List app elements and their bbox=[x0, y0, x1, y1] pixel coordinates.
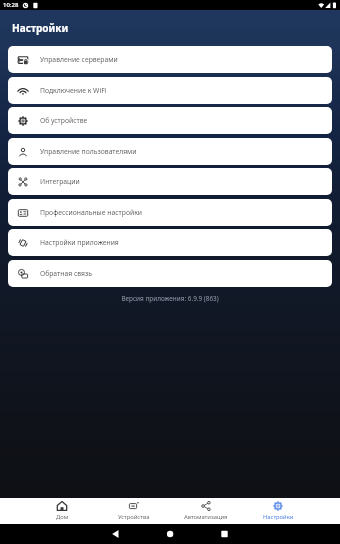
button[interactable]: Устройства bbox=[98, 498, 170, 524]
button[interactable]: Профессиональные настройки bbox=[8, 199, 332, 226]
staticText: Устройства bbox=[118, 513, 150, 521]
staticText: Об устройстве bbox=[40, 116, 88, 125]
staticText: Автоматизация bbox=[184, 513, 228, 521]
staticText: 10:28 bbox=[3, 1, 19, 9]
staticText: Обратная связь bbox=[40, 269, 93, 278]
button[interactable]: Настройки приложения bbox=[8, 229, 332, 256]
staticText: Дом bbox=[56, 513, 69, 521]
staticText: Настройки приложения bbox=[40, 238, 119, 247]
staticText: Управление серверами bbox=[40, 55, 118, 64]
staticText: Настройки bbox=[12, 21, 69, 35]
button[interactable]: Интеграции bbox=[8, 168, 332, 195]
button[interactable]: Об устройстве bbox=[8, 107, 332, 134]
button[interactable]: Дом bbox=[26, 498, 98, 524]
staticText: Управление пользователями bbox=[40, 147, 137, 156]
button[interactable]: Подключение к WiFi bbox=[8, 77, 332, 104]
staticText: Подключение к WiFi bbox=[40, 86, 107, 95]
button[interactable]: Настройки bbox=[242, 498, 314, 524]
staticText: Версия приложения: 6.9.9 (863) bbox=[0, 294, 340, 303]
staticText: Интеграции bbox=[40, 177, 80, 186]
button[interactable]: Автоматизация bbox=[170, 498, 242, 524]
staticText: Профессиональные настройки bbox=[40, 208, 142, 217]
button[interactable]: Управление пользователями bbox=[8, 138, 332, 165]
button[interactable]: Управление серверами bbox=[8, 46, 332, 73]
staticText: Настройки bbox=[263, 513, 294, 521]
button[interactable]: Обратная связь bbox=[8, 260, 332, 287]
